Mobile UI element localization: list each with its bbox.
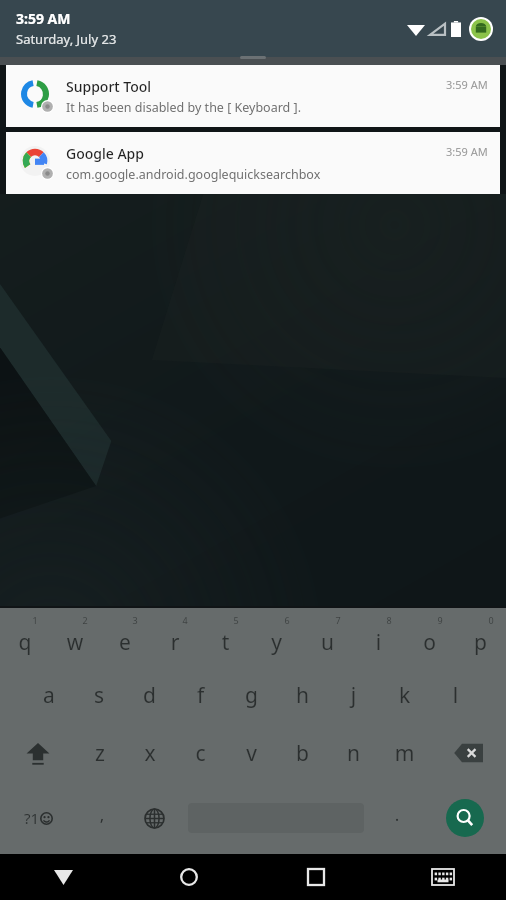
button[interactable]: m bbox=[379, 724, 430, 782]
staticText: 6 bbox=[284, 614, 290, 626]
button[interactable]: Change language bbox=[128, 782, 180, 854]
staticText: 3:59 AM bbox=[16, 9, 71, 28]
button[interactable]: v bbox=[226, 724, 277, 782]
staticText: y bbox=[251, 628, 302, 657]
button[interactable]: Switch keyboard bbox=[379, 854, 506, 900]
button[interactable]: User profile bbox=[469, 17, 493, 41]
button[interactable]: Hide keyboard bbox=[0, 854, 126, 900]
button[interactable]: l bbox=[430, 666, 481, 724]
button[interactable]: Backspace bbox=[430, 724, 506, 782]
staticText: Saturday, July 23 bbox=[16, 30, 117, 48]
button[interactable]: 7 bbox=[302, 608, 353, 666]
button[interactable]: 0 bbox=[455, 608, 506, 666]
button[interactable]: 5 bbox=[200, 608, 251, 666]
button[interactable]: 6 bbox=[251, 608, 302, 666]
button[interactable]: n bbox=[328, 724, 379, 782]
staticText: r bbox=[150, 628, 200, 657]
staticText: f bbox=[175, 681, 226, 710]
button[interactable]: Google App bbox=[6, 132, 500, 194]
staticText: j bbox=[328, 681, 379, 710]
staticText: 2 bbox=[82, 614, 88, 626]
staticText: 5 bbox=[233, 614, 239, 626]
button[interactable]: Search bbox=[423, 782, 506, 854]
staticText: o bbox=[404, 628, 455, 657]
staticText: 0 bbox=[488, 614, 494, 626]
button[interactable]: a bbox=[24, 666, 74, 724]
staticText: w bbox=[50, 628, 100, 657]
staticText: com.google.android.googlequicksearchbox bbox=[66, 166, 321, 183]
staticText: x bbox=[125, 739, 175, 768]
staticText: u bbox=[302, 628, 353, 657]
staticText: 3:59 AM bbox=[446, 77, 488, 92]
button[interactable]: g bbox=[226, 666, 277, 724]
button[interactable]: j bbox=[328, 666, 379, 724]
button[interactable]: 9 bbox=[404, 608, 455, 666]
button[interactable]: s bbox=[74, 666, 124, 724]
staticText: m bbox=[379, 739, 430, 768]
button[interactable]: 4 bbox=[150, 608, 200, 666]
staticText: b bbox=[277, 739, 328, 768]
staticText: i bbox=[353, 628, 404, 657]
staticText: 9 bbox=[437, 614, 443, 626]
staticText: k bbox=[379, 681, 430, 710]
staticText: d bbox=[124, 681, 175, 710]
button[interactable]: Symbols and emoji bbox=[0, 782, 76, 854]
staticText: h bbox=[277, 681, 328, 710]
button[interactable]: 8 bbox=[353, 608, 404, 666]
staticText: s bbox=[74, 681, 124, 710]
staticText: n bbox=[328, 739, 379, 768]
button[interactable]: d bbox=[124, 666, 175, 724]
button[interactable]: x bbox=[125, 724, 175, 782]
staticText: It has been disabled by the [ Keyboard ]… bbox=[66, 99, 302, 116]
staticText: p bbox=[455, 628, 506, 657]
button[interactable]: 2 bbox=[50, 608, 100, 666]
staticText: l bbox=[430, 681, 481, 710]
staticText: 1 bbox=[32, 614, 38, 626]
staticText: t bbox=[200, 628, 251, 657]
button[interactable]: Shift bbox=[0, 724, 75, 782]
button[interactable]: h bbox=[277, 666, 328, 724]
button[interactable]: z bbox=[75, 724, 125, 782]
staticText: 3 bbox=[132, 614, 138, 626]
button[interactable]: 1 bbox=[0, 608, 50, 666]
staticText: , bbox=[76, 803, 128, 826]
staticText: q bbox=[0, 628, 50, 657]
staticText: ?1 bbox=[24, 808, 40, 828]
staticText: v bbox=[226, 739, 277, 768]
staticText: g bbox=[226, 681, 277, 710]
button[interactable]: c bbox=[175, 724, 226, 782]
button[interactable]: Recent apps bbox=[252, 854, 379, 900]
button[interactable] bbox=[180, 782, 371, 854]
button[interactable]: k bbox=[379, 666, 430, 724]
staticText: c bbox=[175, 739, 226, 768]
staticText: 3:59 AM bbox=[446, 144, 488, 159]
staticText: e bbox=[100, 628, 150, 657]
staticText: 7 bbox=[335, 614, 341, 626]
button[interactable]: Support Tool bbox=[6, 65, 500, 127]
button[interactable]: Home bbox=[126, 854, 252, 900]
staticText: 8 bbox=[386, 614, 392, 626]
button[interactable]: b bbox=[277, 724, 328, 782]
staticText: 4 bbox=[182, 614, 188, 626]
button[interactable]: f bbox=[175, 666, 226, 724]
staticText: Google App bbox=[66, 144, 144, 163]
staticText: a bbox=[24, 681, 74, 710]
staticText: z bbox=[75, 739, 125, 768]
button[interactable]: 3 bbox=[100, 608, 150, 666]
staticText: Support Tool bbox=[66, 77, 152, 96]
